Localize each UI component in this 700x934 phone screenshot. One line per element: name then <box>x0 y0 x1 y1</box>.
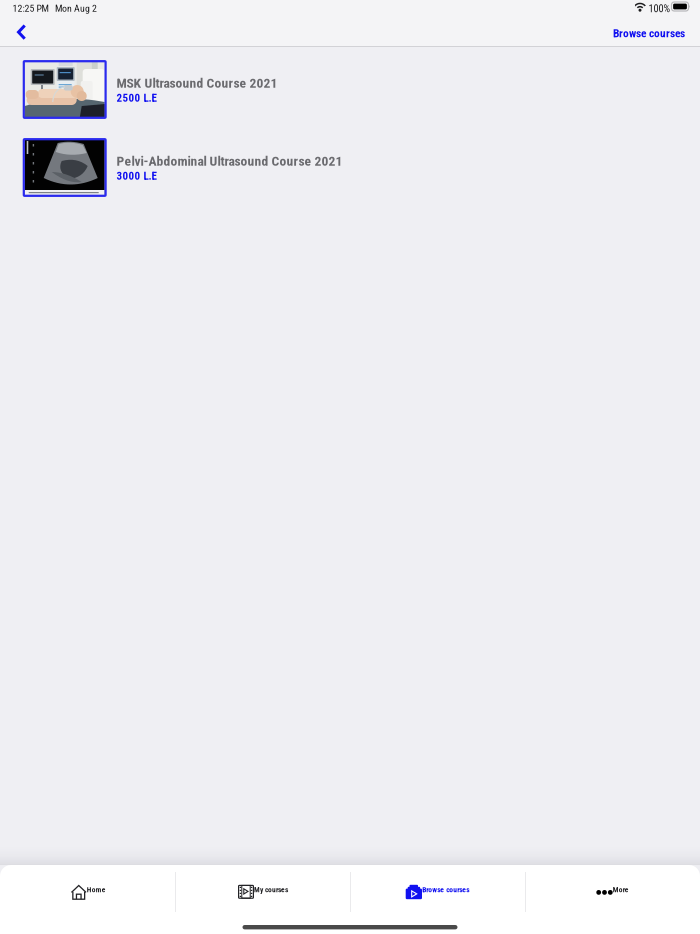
staticText: Mon Aug 2 <box>55 2 97 14</box>
button[interactable]: MSK Ultrasound Course 2021 <box>0 61 700 139</box>
staticText: 100% <box>648 2 670 15</box>
button[interactable]: Browse courses <box>350 865 525 911</box>
button[interactable]: My courses <box>175 865 350 911</box>
button[interactable]: Home <box>0 865 175 911</box>
staticText: My courses <box>254 885 288 894</box>
staticText: 12:25 PM <box>12 2 48 14</box>
staticText: 3000 L.E <box>116 169 156 182</box>
button[interactable]: More <box>525 865 700 911</box>
button[interactable]: Browse courses <box>600 22 690 46</box>
staticText: 2500 L.E <box>116 91 156 104</box>
staticText: Browse courses <box>422 885 469 894</box>
staticText: Browse courses <box>613 26 685 40</box>
button[interactable]: Back <box>3 22 43 46</box>
staticText: Pelvi-Abdominal Ultrasound Course 2021 <box>116 153 342 169</box>
staticText: MSK Ultrasound Course 2021 <box>116 75 277 91</box>
staticText: More <box>613 885 629 894</box>
staticText: Home <box>87 885 106 894</box>
button[interactable]: Pelvi-Abdominal Ultrasound Course 2021 <box>0 139 700 217</box>
